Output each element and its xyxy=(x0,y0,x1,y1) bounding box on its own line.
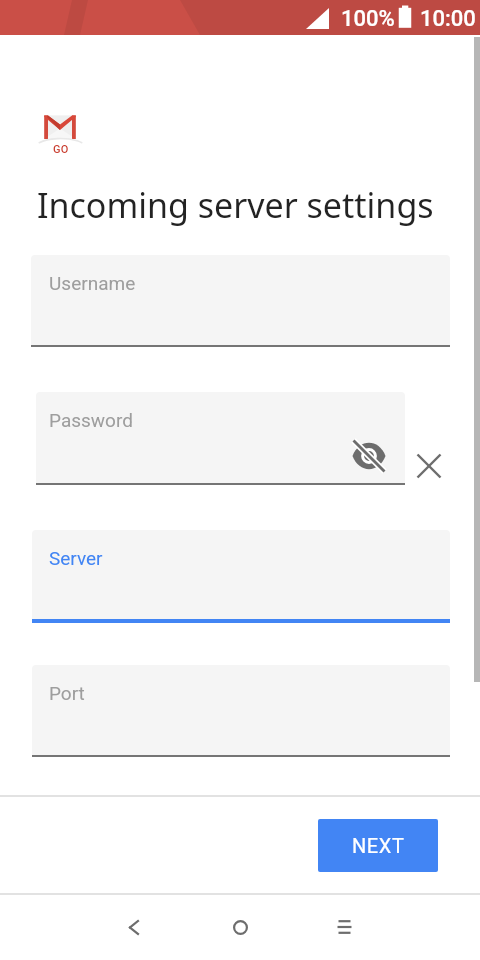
staticText: GO xyxy=(53,143,69,156)
staticText: Password xyxy=(49,409,133,431)
button[interactable]: Username xyxy=(31,255,450,345)
button[interactable]: NEXT xyxy=(318,819,438,872)
staticText: Incoming server settings xyxy=(37,182,434,228)
staticText: 10:00 xyxy=(420,6,476,32)
button[interactable]: Show password xyxy=(347,436,391,476)
staticText: Port xyxy=(49,682,85,704)
button[interactable]: Home xyxy=(216,903,264,951)
button[interactable]: Server xyxy=(32,530,450,619)
button[interactable]: Recent apps xyxy=(320,903,368,951)
staticText: 100% xyxy=(341,6,395,32)
staticText: Server xyxy=(49,547,103,569)
button[interactable]: Password xyxy=(36,392,405,483)
button[interactable]: Back xyxy=(110,903,158,951)
staticText: NEXT xyxy=(352,834,405,857)
button[interactable]: Port xyxy=(32,665,450,755)
button[interactable]: Clear xyxy=(405,442,453,490)
staticText: Username xyxy=(49,272,136,294)
